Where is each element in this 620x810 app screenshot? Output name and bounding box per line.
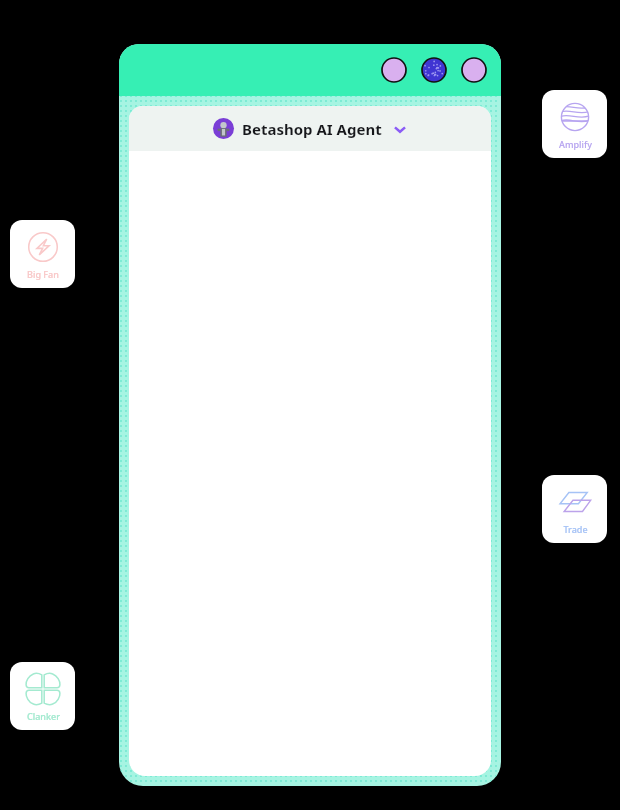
button[interactable]: Big Fan: [10, 220, 75, 288]
staticText: Big Fan: [27, 268, 59, 280]
button[interactable]: Account two: [421, 57, 447, 83]
button[interactable]: Account one: [381, 57, 407, 83]
staticText: Clanker: [27, 710, 60, 722]
button[interactable]: Trade: [542, 475, 607, 543]
button[interactable]: Account three: [461, 57, 487, 83]
button[interactable]: Clanker: [10, 662, 75, 730]
staticText: Amplify: [559, 138, 592, 150]
button[interactable]: Betashop AI Agent: [129, 106, 491, 151]
staticText: Betashop AI Agent: [242, 119, 382, 139]
button[interactable]: Amplify: [542, 90, 607, 158]
staticText: Trade: [563, 523, 588, 535]
